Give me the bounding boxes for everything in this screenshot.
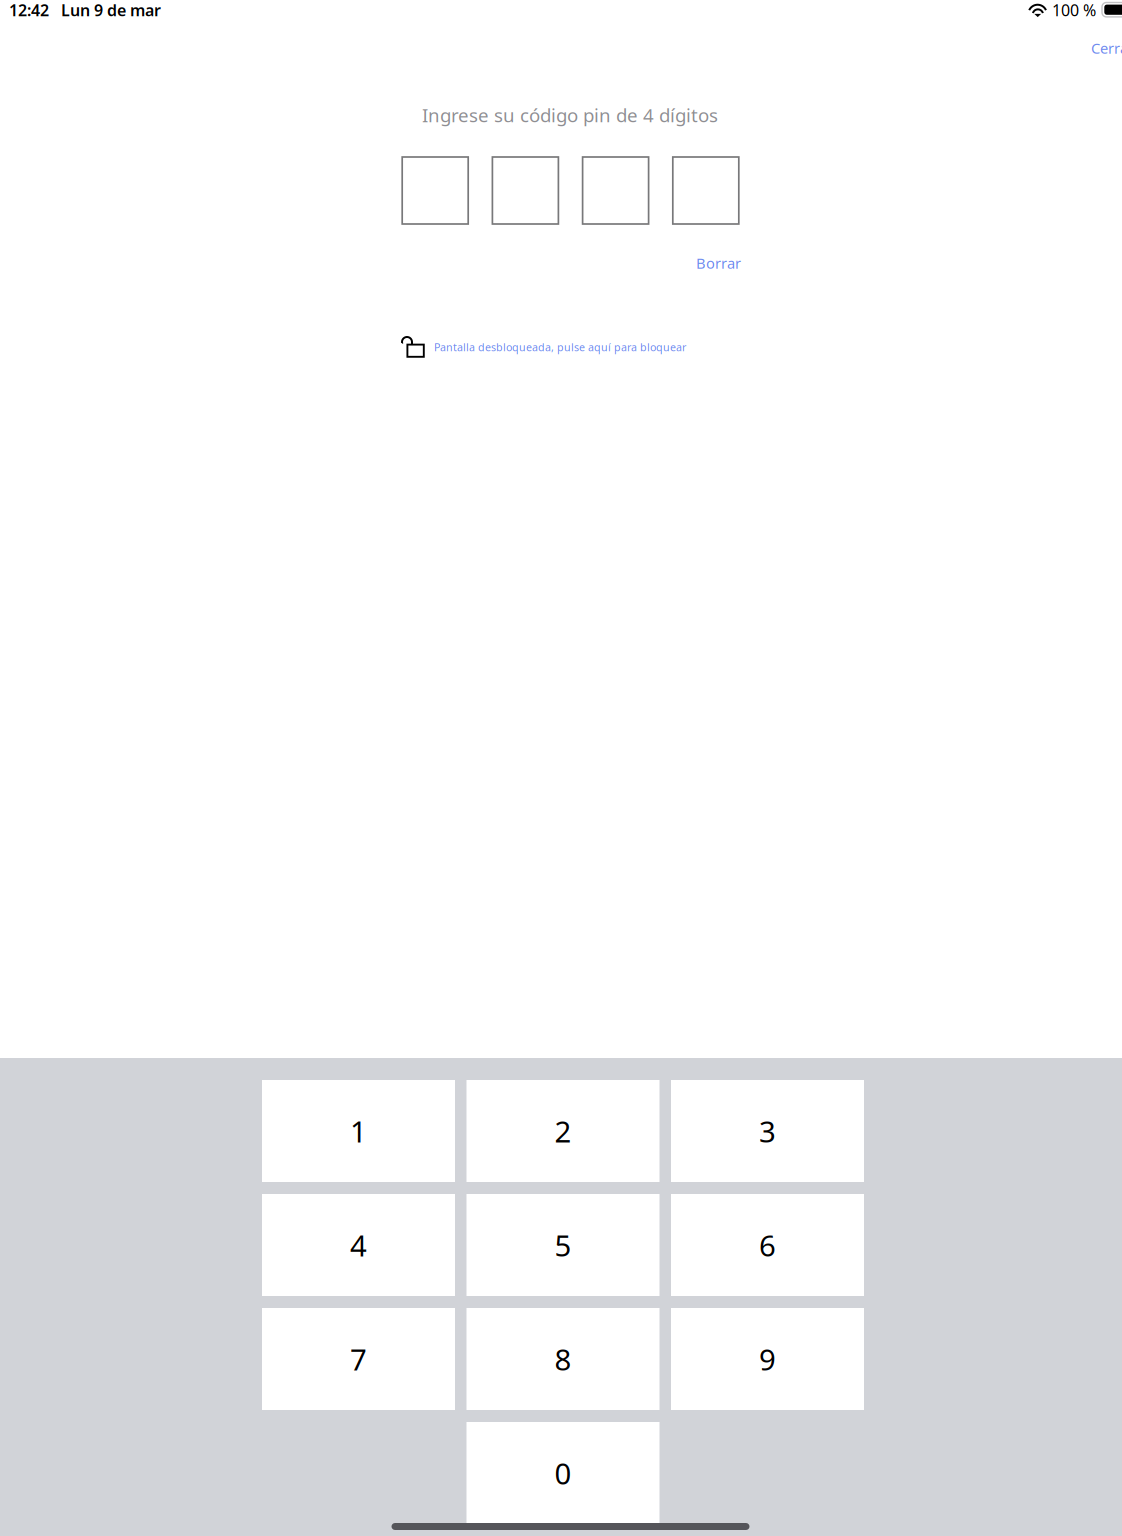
staticText: Ingrese su código pin de 4 dígitos	[422, 103, 718, 127]
button[interactable]: 9	[671, 1308, 864, 1410]
staticText: 2	[554, 1111, 571, 1150]
staticText: 4	[350, 1225, 367, 1264]
staticText: 9	[759, 1339, 776, 1378]
staticText: Borrar	[696, 253, 741, 273]
staticText: Cerrar	[1091, 38, 1122, 58]
staticText: Pantalla desbloqueada, pulse aquí para b…	[434, 340, 686, 354]
staticText: 8	[554, 1339, 571, 1378]
button[interactable]: 5	[466, 1194, 659, 1296]
button[interactable]: 4	[262, 1194, 455, 1296]
button[interactable]: 2	[466, 1080, 659, 1182]
button[interactable]: Pantalla desbloqueada, pulse aquí para b…	[400, 332, 685, 358]
staticText: 3	[759, 1111, 776, 1150]
button[interactable]: 6	[671, 1194, 864, 1296]
button[interactable]: 3	[671, 1080, 864, 1182]
staticText: 5	[554, 1225, 571, 1264]
staticText: 12:42	[9, 0, 49, 21]
button[interactable]: 0	[466, 1422, 659, 1524]
staticText: 100 %	[1052, 0, 1096, 21]
button[interactable]: 8	[466, 1308, 659, 1410]
staticText: Lun 9 de mar	[61, 0, 161, 21]
button[interactable]: Borrar	[681, 253, 741, 273]
staticText: 6	[759, 1225, 776, 1264]
button[interactable]: 1	[262, 1080, 455, 1182]
staticText: 0	[554, 1453, 571, 1492]
button[interactable]: 7	[262, 1308, 455, 1410]
staticText: 1	[350, 1111, 367, 1150]
button[interactable]: Cerrar	[1091, 37, 1122, 59]
staticText: 7	[350, 1339, 367, 1378]
button[interactable]: Código PIN de 4 dígitos	[402, 157, 739, 224]
